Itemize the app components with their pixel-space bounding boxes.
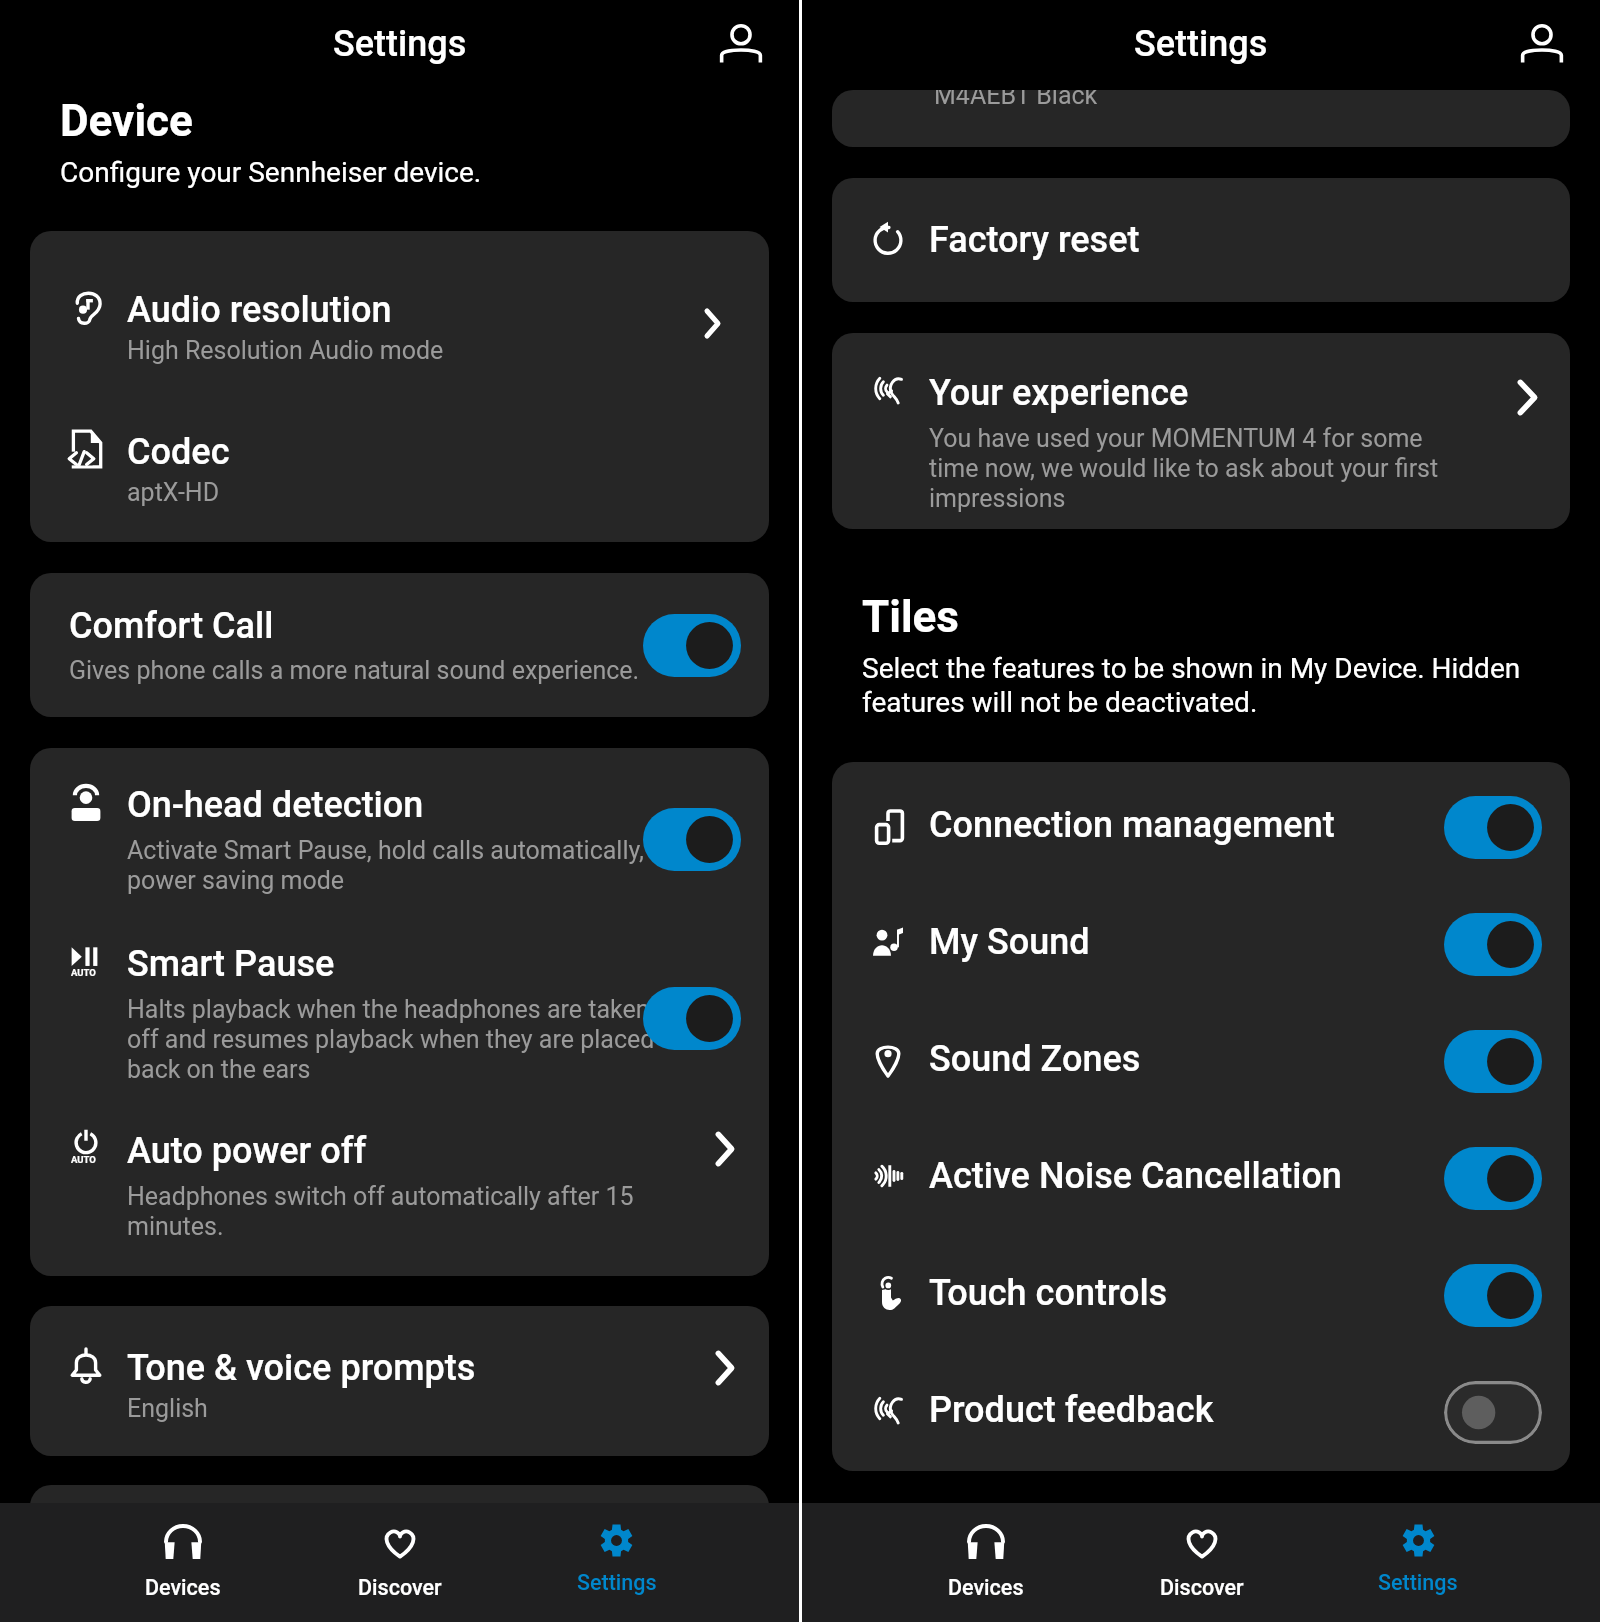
staticText: Sound Zones <box>929 1038 1436 1080</box>
staticText: Devices <box>145 1575 221 1600</box>
staticText: Device <box>60 95 193 147</box>
staticText: AUTO <box>71 1154 96 1165</box>
button[interactable]: Sound Zones toggle <box>1444 1030 1542 1093</box>
staticText: Settings <box>333 23 467 65</box>
button[interactable]: Your experience <box>832 333 1570 529</box>
button[interactable]: Settings <box>508 1503 725 1622</box>
staticText: Select the features to be shown in My De… <box>862 652 1534 718</box>
button[interactable]: Connection management toggle <box>1444 796 1542 859</box>
button[interactable]: Factory reset <box>832 178 1570 302</box>
staticText: Connection management <box>929 804 1436 846</box>
staticText: M4AEBT Black <box>934 90 1098 110</box>
staticText: Settings <box>1134 23 1268 65</box>
button[interactable]: Tone & voice prompts <box>30 1306 769 1456</box>
staticText: My Sound <box>929 921 1436 963</box>
staticText: Headphones switch off automatically afte… <box>127 1182 662 1241</box>
button[interactable]: Account <box>711 13 771 73</box>
staticText: AUTO <box>71 967 96 978</box>
staticText: Active Noise Cancellation <box>929 1155 1436 1197</box>
button[interactable]: Active Noise Cancellation <box>832 1117 1570 1234</box>
button[interactable]: Sound Zones <box>832 1000 1570 1117</box>
button[interactable]: Active Noise Cancellation toggle <box>1444 1147 1542 1210</box>
button[interactable]: On-head detection toggle <box>643 808 741 871</box>
staticText: Settings <box>1378 1570 1458 1595</box>
button[interactable]: My Sound toggle <box>1444 913 1542 976</box>
button[interactable]: Account <box>1512 13 1572 73</box>
staticText: Discover <box>358 1575 442 1600</box>
staticText: Audio resolution <box>127 289 392 331</box>
button[interactable]: AUTO <box>30 895 769 1084</box>
button[interactable]: Connection management <box>832 766 1570 883</box>
staticText: High Resolution Audio mode <box>127 336 444 365</box>
staticText: Configure your Sennheiser device. <box>60 156 482 189</box>
staticText: Factory reset <box>929 219 1140 261</box>
button[interactable]: Touch controls <box>832 1234 1570 1351</box>
button[interactable]: Settings <box>1310 1503 1526 1622</box>
button[interactable]: Devices <box>877 1503 1094 1622</box>
staticText: aptX-HD <box>127 478 220 507</box>
staticText: You have used your MOMENTUM 4 for some t… <box>929 424 1464 513</box>
button[interactable]: My Sound <box>832 883 1570 1000</box>
button[interactable]: Discover <box>1094 1503 1310 1622</box>
staticText: Discover <box>1160 1575 1244 1600</box>
staticText: Comfort Call <box>69 605 274 647</box>
staticText: On-head detection <box>127 784 424 826</box>
button[interactable]: Touch controls toggle <box>1444 1264 1542 1327</box>
button[interactable]: Audio resolution <box>30 231 769 365</box>
button[interactable]: Smart Pause toggle <box>643 987 741 1050</box>
button[interactable]: AUTO <box>30 1084 769 1276</box>
staticText: Devices <box>948 1575 1024 1600</box>
button[interactable]: Devices <box>75 1503 291 1622</box>
staticText: Halts playback when the headphones are t… <box>127 995 662 1084</box>
staticText: Gives phone calls a more natural sound e… <box>69 656 649 685</box>
staticText: Tiles <box>862 591 959 643</box>
button[interactable]: Comfort Call toggle <box>643 614 741 677</box>
staticText: Touch controls <box>929 1272 1436 1314</box>
staticText: Smart Pause <box>127 943 335 985</box>
button[interactable]: Product feedback toggle <box>1444 1381 1542 1444</box>
staticText: Settings <box>577 1570 657 1595</box>
button[interactable]: On-head detection <box>30 748 769 895</box>
button[interactable]: Discover <box>291 1503 508 1622</box>
staticText: Your experience <box>929 372 1189 414</box>
staticText: Auto power off <box>127 1130 367 1172</box>
staticText: Product feedback <box>929 1389 1436 1431</box>
staticText: Codec <box>127 431 230 473</box>
button[interactable]: Comfort Call <box>30 573 769 717</box>
button[interactable]: Codec <box>30 365 769 542</box>
button[interactable]: Product feedback <box>832 1351 1570 1468</box>
staticText: Activate Smart Pause, hold calls automat… <box>127 836 662 895</box>
staticText: English <box>127 1394 208 1423</box>
staticText: Tone & voice prompts <box>127 1347 476 1389</box>
